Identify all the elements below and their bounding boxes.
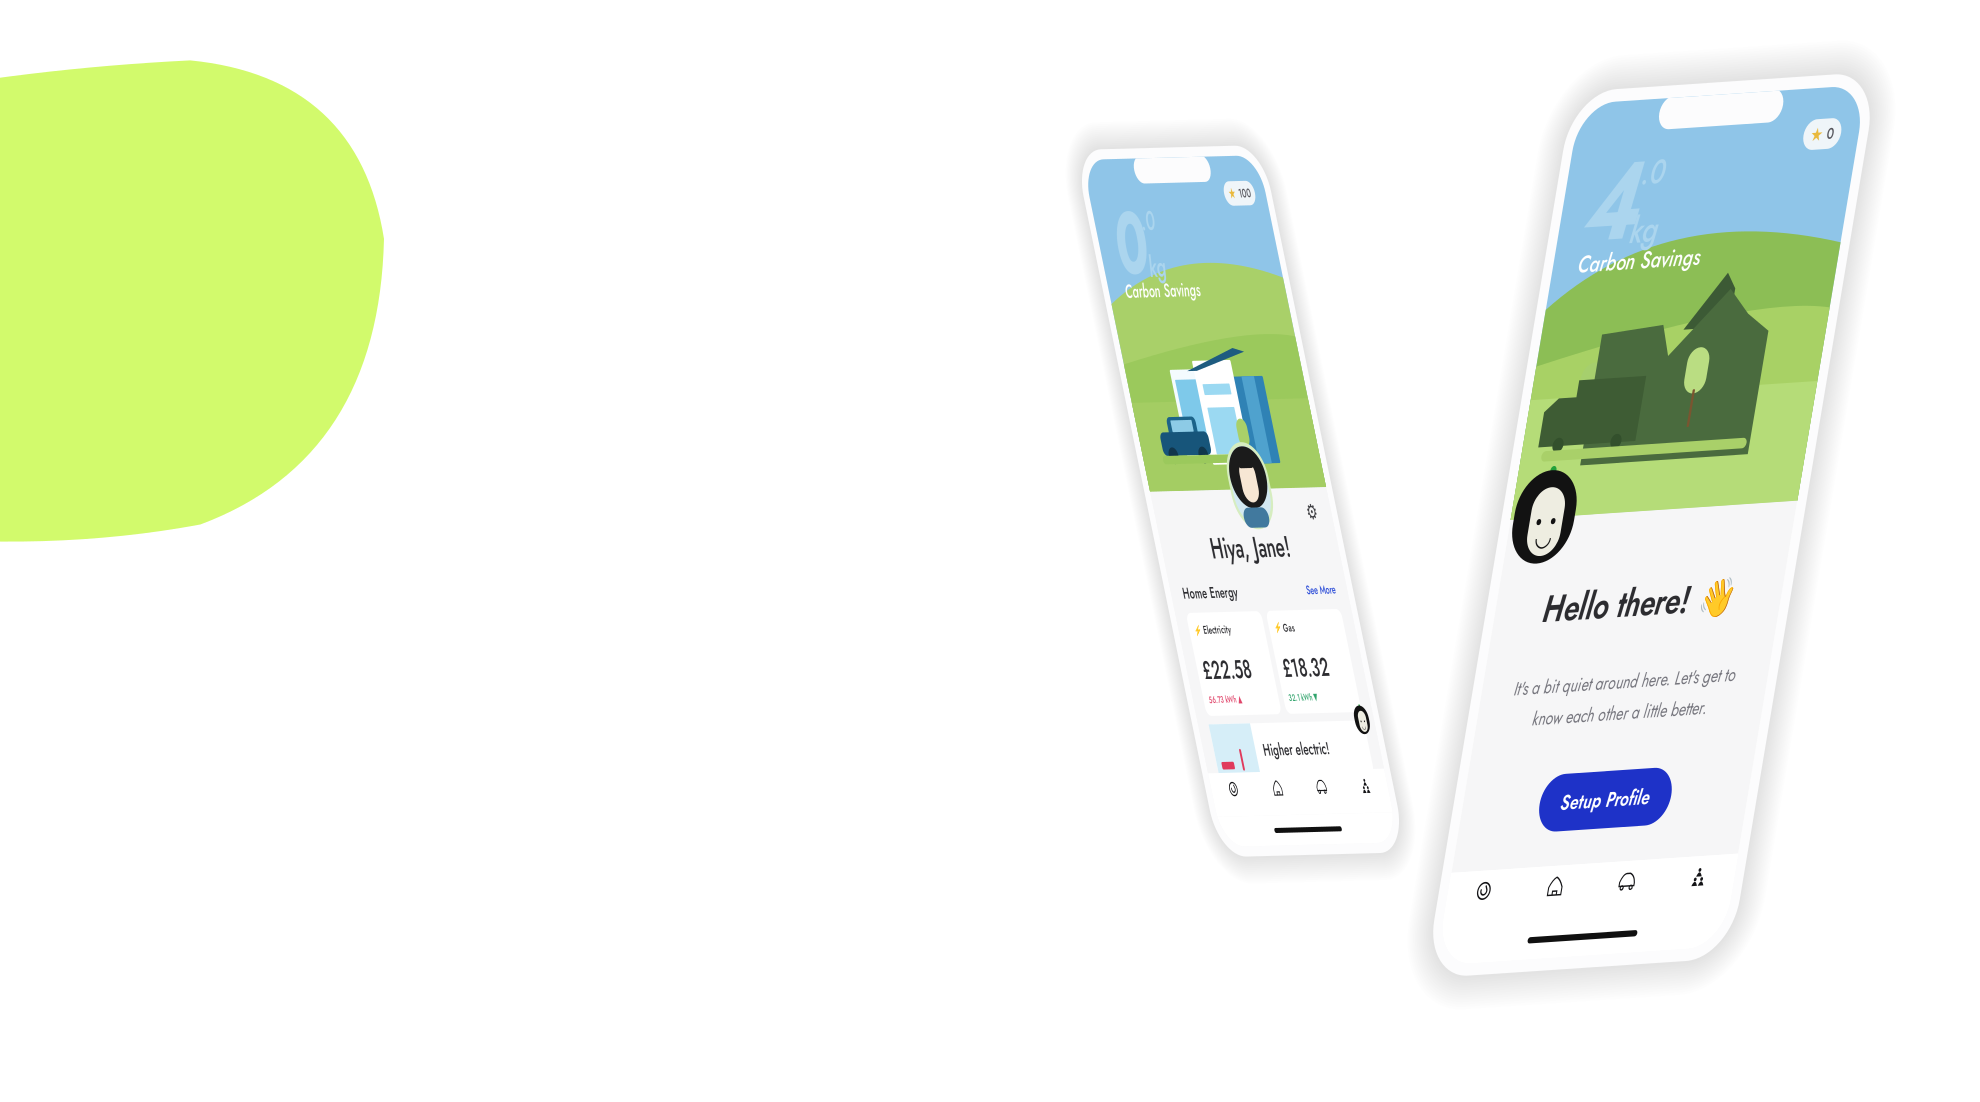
staticText: Hiya, Jane! xyxy=(1186,602,1351,652)
staticText: kg xyxy=(1677,204,1713,254)
staticText: kg xyxy=(1178,266,1214,316)
staticText: Gas xyxy=(1303,714,1327,733)
staticText: Carbon Savings xyxy=(1617,242,1773,275)
staticText: Home Energy xyxy=(1110,666,1224,693)
staticText: Hello there! 👋 xyxy=(1646,562,1889,614)
staticText: ⚡ xyxy=(1285,717,1300,731)
staticText: It's a bit quiet around here. Let's get … xyxy=(1626,650,1909,676)
staticText: See More xyxy=(1367,669,1428,690)
button[interactable]: See More xyxy=(1367,669,1428,690)
button[interactable]: Setup Profile xyxy=(1684,748,1852,803)
staticText: Setup Profile xyxy=(1711,761,1825,790)
staticText: £22.58 xyxy=(1119,749,1220,794)
button[interactable]: Community xyxy=(1360,894,1452,946)
staticText: 4 xyxy=(1616,125,1686,275)
staticText: ◡ xyxy=(1620,503,1642,532)
staticText: 0 xyxy=(1117,187,1184,337)
button[interactable]: Home xyxy=(1676,836,1768,888)
staticText: Electricity xyxy=(1137,714,1194,733)
staticText: know each other a little better. xyxy=(1656,680,1879,706)
button[interactable]: Rewards xyxy=(1585,836,1676,888)
staticText: £18.32 xyxy=(1285,749,1381,794)
staticText: Higher electric! xyxy=(1210,854,1347,882)
